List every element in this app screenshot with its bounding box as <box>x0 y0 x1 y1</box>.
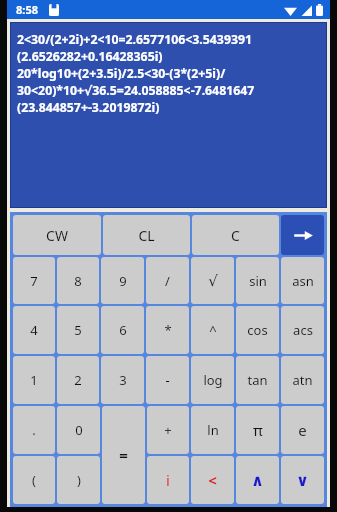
staticText: 4 <box>30 321 38 339</box>
staticText: 2<30/(2+2i)+2<10=2.6577106<3.5439391 <box>17 31 253 48</box>
button[interactable]: CL <box>103 215 190 255</box>
staticText: i <box>166 470 170 490</box>
staticText: 7 <box>30 272 38 290</box>
button[interactable]: ln <box>191 406 234 454</box>
button[interactable]: 4 <box>13 306 55 354</box>
staticText: ) <box>77 471 81 489</box>
button[interactable]: e <box>281 406 324 454</box>
button[interactable]: ^ <box>191 306 234 354</box>
staticText: asn <box>292 272 314 290</box>
button[interactable]: - <box>146 356 189 404</box>
staticText: ∨ <box>296 471 309 490</box>
staticText: √ <box>208 272 218 289</box>
staticText: 1 <box>30 371 38 389</box>
button[interactable]: * <box>146 306 189 354</box>
staticText: atn <box>292 371 313 389</box>
staticText: ^ <box>209 321 217 339</box>
button[interactable]: acs <box>281 306 324 354</box>
staticText: e <box>298 420 307 440</box>
button[interactable]: ) <box>57 456 100 504</box>
button[interactable]: 8 <box>57 257 99 304</box>
staticText: - <box>165 371 170 389</box>
staticText: ∧ <box>251 471 264 490</box>
staticText: (2.6526282+0.16428365i) <box>17 48 163 65</box>
button[interactable]: / <box>146 257 189 304</box>
staticText: < <box>208 470 217 490</box>
staticText: log <box>203 371 223 389</box>
staticText: 5 <box>74 321 82 339</box>
button[interactable]: CW <box>13 215 101 255</box>
button[interactable]: C <box>192 215 279 255</box>
button[interactable]: sin <box>236 257 279 304</box>
button[interactable]: ∨ <box>281 456 324 504</box>
button[interactable]: cos <box>236 306 279 354</box>
button[interactable]: ( <box>13 456 55 504</box>
staticText: ( <box>32 471 36 489</box>
staticText: 6 <box>119 321 127 339</box>
staticText: + <box>164 421 172 439</box>
staticText: . <box>32 421 36 439</box>
staticText: (23.844857+-3.2019872i) <box>17 99 160 116</box>
button[interactable]: atn <box>281 356 324 404</box>
button[interactable]: tan <box>236 356 279 404</box>
button[interactable]: i <box>147 456 189 504</box>
button[interactable]: < <box>191 456 234 504</box>
staticText: 30<20)*10+√36.5=24.058885<-7.6481647 <box>17 82 255 99</box>
staticText: / <box>165 272 170 290</box>
button[interactable]: 0 <box>57 406 100 454</box>
staticText: acs <box>293 321 313 339</box>
staticText: π <box>253 420 263 440</box>
staticText: 2 <box>74 371 82 389</box>
button[interactable]: asn <box>281 257 324 304</box>
staticText: 8:58 <box>16 2 38 17</box>
button[interactable]: 7 <box>13 257 55 304</box>
button[interactable]: π <box>236 406 279 454</box>
button[interactable]: Next <box>281 215 324 255</box>
button[interactable]: √ <box>191 257 234 304</box>
staticText: = <box>119 445 128 465</box>
button[interactable]: 6 <box>101 306 144 354</box>
staticText: 0 <box>75 421 83 439</box>
button[interactable]: ∧ <box>236 456 279 504</box>
staticText: CW <box>46 226 68 245</box>
staticText: tan <box>247 371 268 389</box>
staticText: CL <box>138 226 155 245</box>
staticText: 8 <box>74 272 82 290</box>
button[interactable]: 5 <box>57 306 99 354</box>
button[interactable]: 2 <box>57 356 99 404</box>
button[interactable]: . <box>13 406 55 454</box>
staticText: 20*log10+(2+3.5i)/2.5<30-(3*(2+5i)/ <box>17 65 226 82</box>
button[interactable]: 9 <box>101 257 144 304</box>
staticText: 3 <box>119 371 127 389</box>
staticText: cos <box>247 321 268 339</box>
staticText: C <box>231 226 240 245</box>
staticText: ln <box>207 421 219 439</box>
button[interactable]: 1 <box>13 356 55 404</box>
button[interactable]: log <box>191 356 234 404</box>
staticText: 9 <box>119 272 127 290</box>
button[interactable]: 3 <box>101 356 144 404</box>
button[interactable]: = <box>102 406 145 504</box>
staticText: * <box>164 321 172 339</box>
staticText: sin <box>249 272 267 290</box>
button[interactable]: + <box>147 406 189 454</box>
